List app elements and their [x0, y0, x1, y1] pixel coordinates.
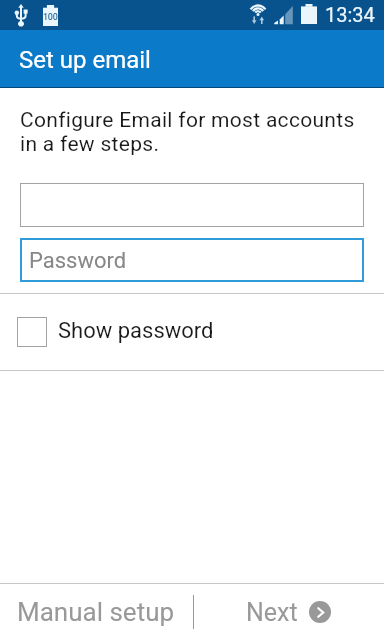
button[interactable]: Email address: [20, 183, 364, 227]
staticText: Manual setup: [17, 597, 175, 627]
staticText: Set up email: [19, 46, 151, 74]
staticText: Configure Email for most accounts in a f…: [20, 108, 355, 156]
staticText: 13:34: [325, 3, 375, 26]
other: Wi-Fi connected: [248, 4, 268, 24]
other: USB connected: [14, 4, 28, 26]
button[interactable]: Manual setup: [0, 584, 192, 640]
staticText: Password: [29, 248, 127, 274]
staticText: 100: [43, 12, 58, 23]
button[interactable]: Show password: [0, 294, 384, 370]
button[interactable]: Next: [192, 584, 384, 640]
staticText: Next: [246, 598, 298, 627]
button[interactable]: Password: [20, 238, 364, 282]
other: Mobile signal: [274, 5, 293, 25]
staticText: Show password: [58, 318, 214, 344]
